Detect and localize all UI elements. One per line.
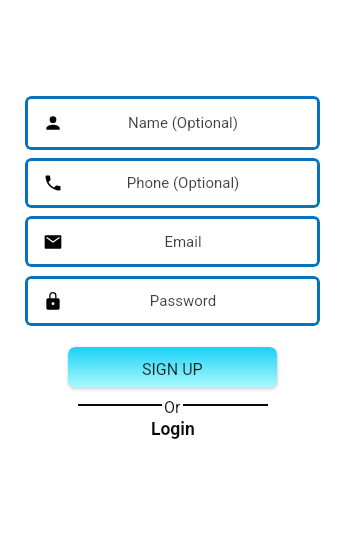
button[interactable]: Phone	[25, 158, 320, 208]
button[interactable]: Email	[25, 216, 320, 267]
other: Password	[25, 291, 81, 311]
staticText: SIGN UP	[142, 360, 203, 379]
button[interactable]: SIGN UP	[68, 347, 277, 388]
staticText: Password	[81, 292, 285, 310]
staticText: Phone (Optional)	[81, 174, 285, 192]
staticText: Or	[164, 398, 181, 417]
staticText: Email	[81, 233, 285, 251]
button[interactable]: Name	[25, 96, 320, 150]
other: Email	[25, 232, 81, 252]
other: Name	[25, 113, 81, 133]
button[interactable]: Login	[143, 416, 203, 443]
button[interactable]: Password	[25, 276, 320, 326]
other: Phone	[25, 173, 81, 193]
staticText: Name (Optional)	[81, 114, 285, 132]
